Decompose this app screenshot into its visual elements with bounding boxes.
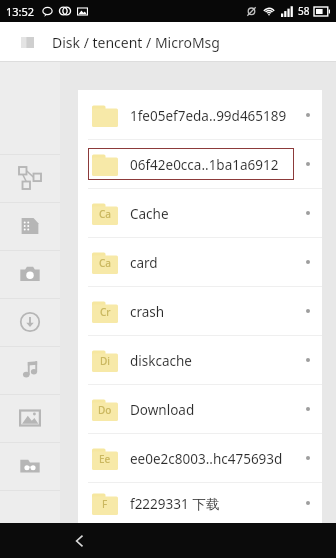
button[interactable]: Private folder bbox=[0, 442, 60, 490]
button[interactable]: Images bbox=[0, 394, 60, 442]
button[interactable]: F bbox=[78, 482, 322, 523]
button[interactable]: Documents bbox=[0, 202, 60, 250]
staticText: Cache bbox=[130, 205, 169, 223]
button[interactable]: Music bbox=[0, 346, 60, 394]
staticText: Disk / tencent / MicroMsg bbox=[52, 33, 220, 52]
staticText: card bbox=[130, 254, 158, 272]
button[interactable]: 06f42e0cca..1ba1a6912 bbox=[78, 139, 322, 188]
button[interactable]: Downloads bbox=[0, 298, 60, 346]
button[interactable]: More options bbox=[294, 335, 322, 384]
staticText: f2229331 下载 bbox=[130, 495, 220, 513]
button[interactable]: 1fe05ef7eda..99d465189 bbox=[78, 90, 322, 139]
button[interactable]: Back bbox=[62, 523, 98, 558]
button[interactable]: More options bbox=[294, 139, 322, 188]
staticText: Ca bbox=[99, 256, 112, 270]
button[interactable]: Do bbox=[78, 384, 322, 433]
staticText: F bbox=[102, 497, 108, 511]
staticText: diskcache bbox=[130, 352, 192, 370]
staticText: crash bbox=[130, 303, 165, 321]
button[interactable]: Ee bbox=[78, 433, 322, 482]
button[interactable]: More options bbox=[294, 286, 322, 335]
button[interactable]: More options bbox=[294, 188, 322, 237]
button[interactable]: More options bbox=[294, 90, 322, 139]
button[interactable]: More options bbox=[294, 237, 322, 286]
staticText: Di bbox=[100, 354, 111, 368]
staticText: 06f42e0cca..1ba1a6912 bbox=[130, 156, 279, 174]
staticText: 13:52 bbox=[6, 4, 35, 19]
button[interactable]: Disk / tencent / MicroMsg bbox=[0, 22, 336, 62]
staticText: Do bbox=[98, 403, 112, 417]
staticText: 1fe05ef7eda..99d465189 bbox=[130, 107, 287, 125]
staticText: Ee bbox=[99, 452, 111, 466]
button[interactable]: Ca bbox=[78, 188, 322, 237]
staticText: Cr bbox=[100, 305, 111, 319]
button[interactable]: Apps bbox=[0, 154, 60, 202]
staticText: Ca bbox=[99, 207, 112, 221]
button[interactable]: Camera bbox=[0, 250, 60, 298]
button[interactable]: Di bbox=[78, 335, 322, 384]
staticText: ee0e2c8003..hc475693d bbox=[130, 450, 283, 468]
staticText: Download bbox=[130, 401, 195, 419]
button[interactable]: More options bbox=[294, 482, 322, 523]
button[interactable]: More options bbox=[294, 433, 322, 482]
button[interactable]: Cr bbox=[78, 286, 322, 335]
staticText: 58 bbox=[298, 4, 310, 18]
button[interactable]: More options bbox=[294, 384, 322, 433]
button[interactable]: Ca bbox=[78, 237, 322, 286]
